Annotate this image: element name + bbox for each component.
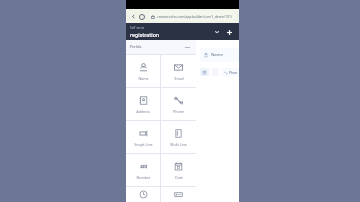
button[interactable]: Phone xyxy=(222,68,239,76)
staticText: creator.zoho.com/appbuilder/user1_demo/1… xyxy=(157,14,233,19)
button[interactable]: Expand xyxy=(211,26,223,38)
button[interactable]: Multi Line xyxy=(161,121,196,153)
button[interactable]: Back xyxy=(129,12,137,20)
button[interactable]: Number xyxy=(126,154,160,186)
staticText: Number xyxy=(136,175,151,180)
button[interactable]: Add xyxy=(223,26,235,38)
button[interactable]: Field type xyxy=(126,187,160,202)
button[interactable]: Reload xyxy=(137,12,146,21)
staticText: Phone xyxy=(173,109,184,114)
staticText: Name xyxy=(211,52,223,58)
button[interactable]: Address xyxy=(126,88,160,120)
button[interactable]: Field type xyxy=(161,187,196,202)
staticText: Single Line xyxy=(134,142,153,147)
button[interactable]: Calendar xyxy=(200,68,209,76)
button[interactable]: Self serve xyxy=(130,26,211,38)
staticText: Email xyxy=(174,76,184,81)
button[interactable]: Name xyxy=(200,48,239,62)
staticText: Multi Line xyxy=(170,142,187,147)
staticText: Date xyxy=(175,175,183,180)
staticText: registration xyxy=(130,31,160,38)
button[interactable]: Phone xyxy=(161,88,196,120)
button[interactable]: creator.zoho.com/appbuilder/user1_demo/1… xyxy=(148,11,236,21)
button[interactable]: Date xyxy=(161,154,196,186)
staticText: Name xyxy=(138,76,149,81)
staticText: Address xyxy=(136,109,150,114)
button[interactable]: Email xyxy=(161,55,196,87)
button[interactable]: Name xyxy=(126,55,160,87)
button[interactable]: Collapse xyxy=(183,43,192,52)
button[interactable]: Single Line xyxy=(126,121,160,153)
staticText: Phone xyxy=(229,70,239,75)
staticText: Fields xyxy=(130,44,183,50)
staticText: Self serve xyxy=(130,26,145,30)
